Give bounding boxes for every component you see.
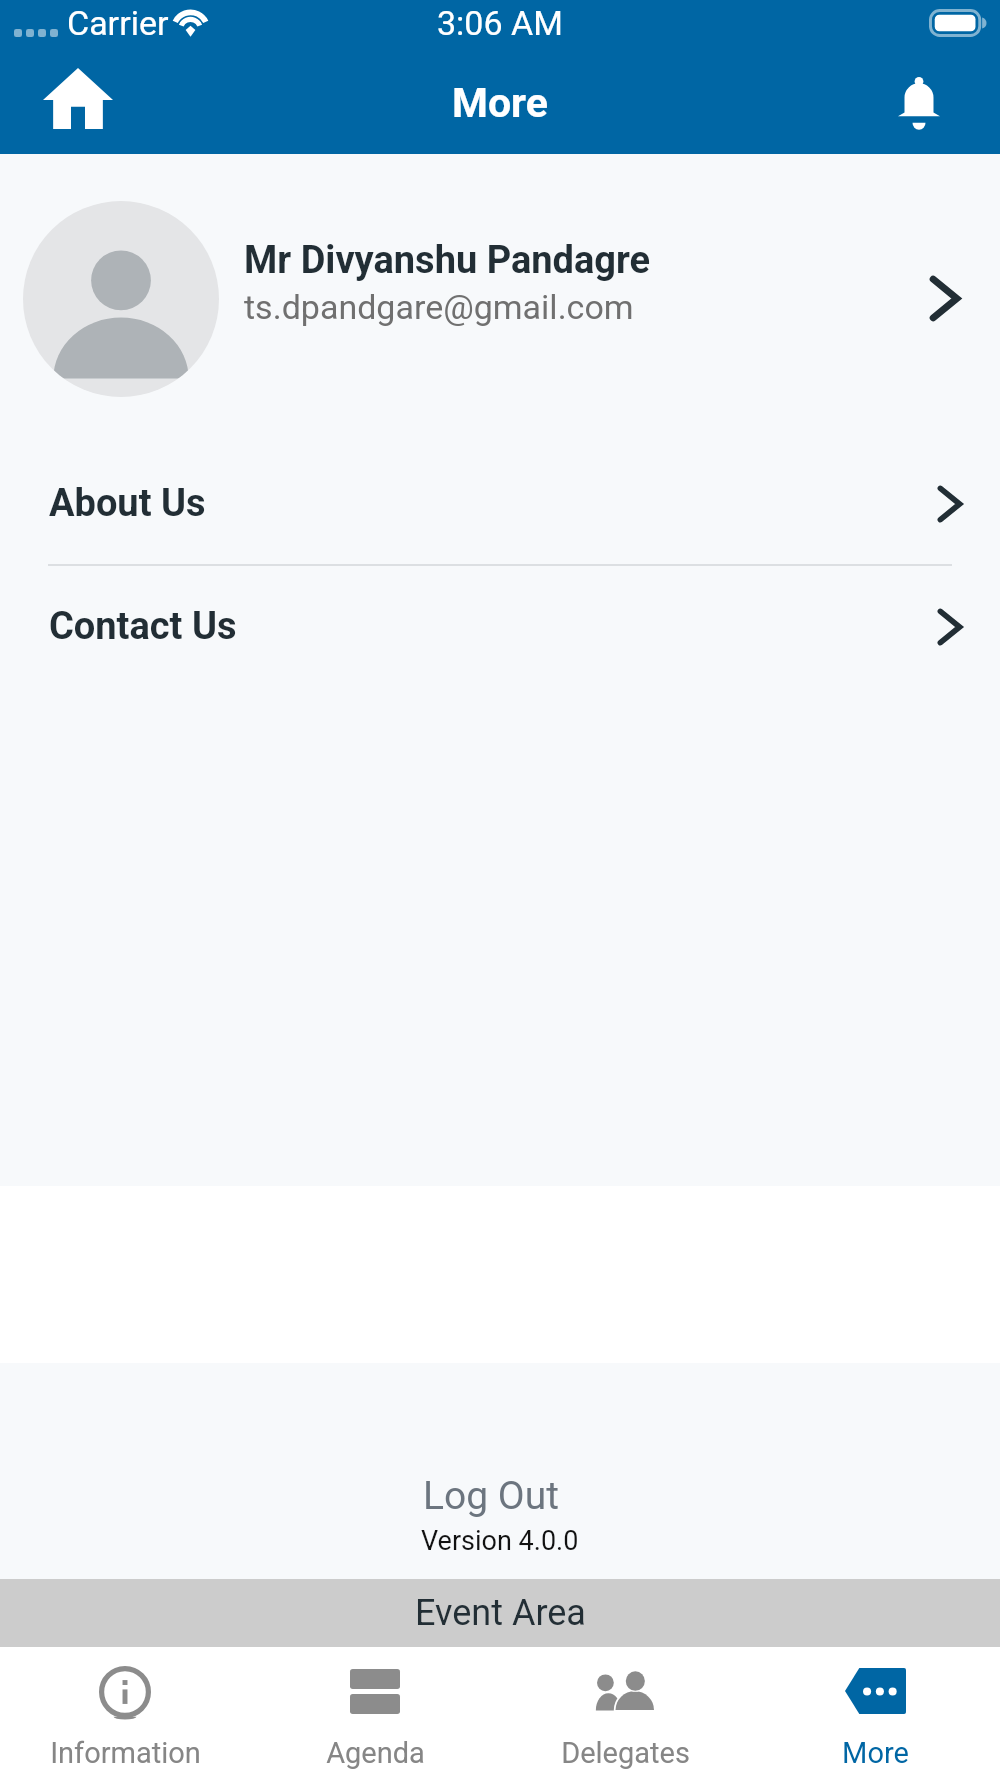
button[interactable]: About Us: [0, 443, 1000, 564]
staticText: Information: [50, 1736, 201, 1770]
staticText: Delegates: [561, 1736, 690, 1770]
staticText: Log Out: [423, 1473, 559, 1519]
staticText: Agenda: [326, 1736, 425, 1770]
staticText: About Us: [49, 481, 937, 526]
button[interactable]: Delegates: [500, 1647, 750, 1778]
button[interactable]: Mr Divyanshu Pandagre: [0, 154, 1000, 443]
staticText: Event Area: [415, 1592, 586, 1634]
button[interactable]: Agenda: [250, 1647, 500, 1778]
button[interactable]: Information: [0, 1647, 250, 1778]
staticText: ts.dpandgare@gmail.com: [244, 287, 634, 327]
button[interactable]: More: [750, 1647, 1000, 1778]
staticText: Mr Divyanshu Pandagre: [244, 238, 651, 283]
button[interactable]: Log Out: [393, 1467, 589, 1525]
staticText: 3:06 AM: [437, 3, 563, 43]
button[interactable]: Contact Us: [0, 566, 1000, 687]
staticText: More: [452, 79, 548, 127]
staticText: Version 4.0.0: [421, 1525, 579, 1557]
staticText: More: [842, 1736, 909, 1770]
button[interactable]: Home: [32, 52, 124, 144]
button[interactable]: Notifications: [873, 53, 965, 145]
staticText: Contact Us: [49, 604, 937, 649]
staticText: Carrier: [67, 3, 169, 43]
